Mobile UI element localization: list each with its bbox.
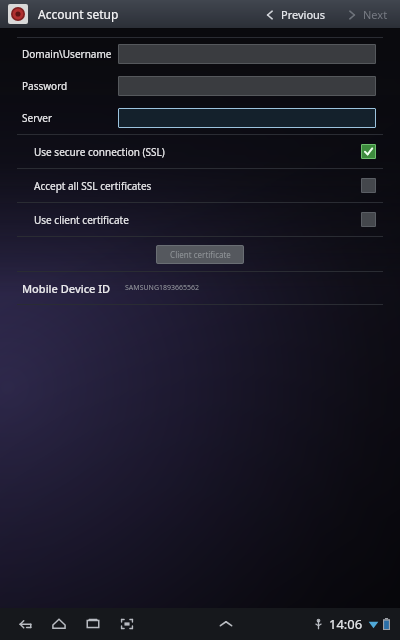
button[interactable]: Screenshot [114,611,140,637]
staticText: Client certificate [170,249,231,260]
staticText: Server [22,111,53,125]
button[interactable]: Recent apps [80,611,106,637]
button[interactable]: Previous [260,5,330,24]
staticText: Previous [281,7,326,22]
button[interactable]: Show notifications [213,611,239,637]
button[interactable]: Client certificate [156,245,244,264]
button[interactable]: Domain\Username [0,38,400,70]
button[interactable]: Next [342,5,392,24]
staticText: Domain\Username [22,47,112,61]
staticText: Accept all SSL certificates [34,179,152,193]
staticText: 14:06 [329,615,363,633]
staticText: Mobile Device ID [22,281,111,296]
button[interactable]: Accept all SSL certificates [0,169,400,202]
button[interactable]: App icon [8,4,28,24]
staticText: Next [363,7,388,22]
staticText: Password [22,79,68,93]
staticText: Use client certificate [34,213,129,227]
button[interactable]: Use client certificate [0,203,400,236]
button[interactable]: Use secure connection (SSL) [0,135,400,168]
button[interactable]: Password [0,70,400,102]
staticText: Use secure connection (SSL) [34,145,165,159]
button[interactable]: Home [46,611,72,637]
button[interactable]: Back [12,611,38,637]
button[interactable]: Server [0,102,400,134]
staticText: SAMSUNG1893665562 [125,283,200,293]
staticText: Account setup [38,6,119,22]
